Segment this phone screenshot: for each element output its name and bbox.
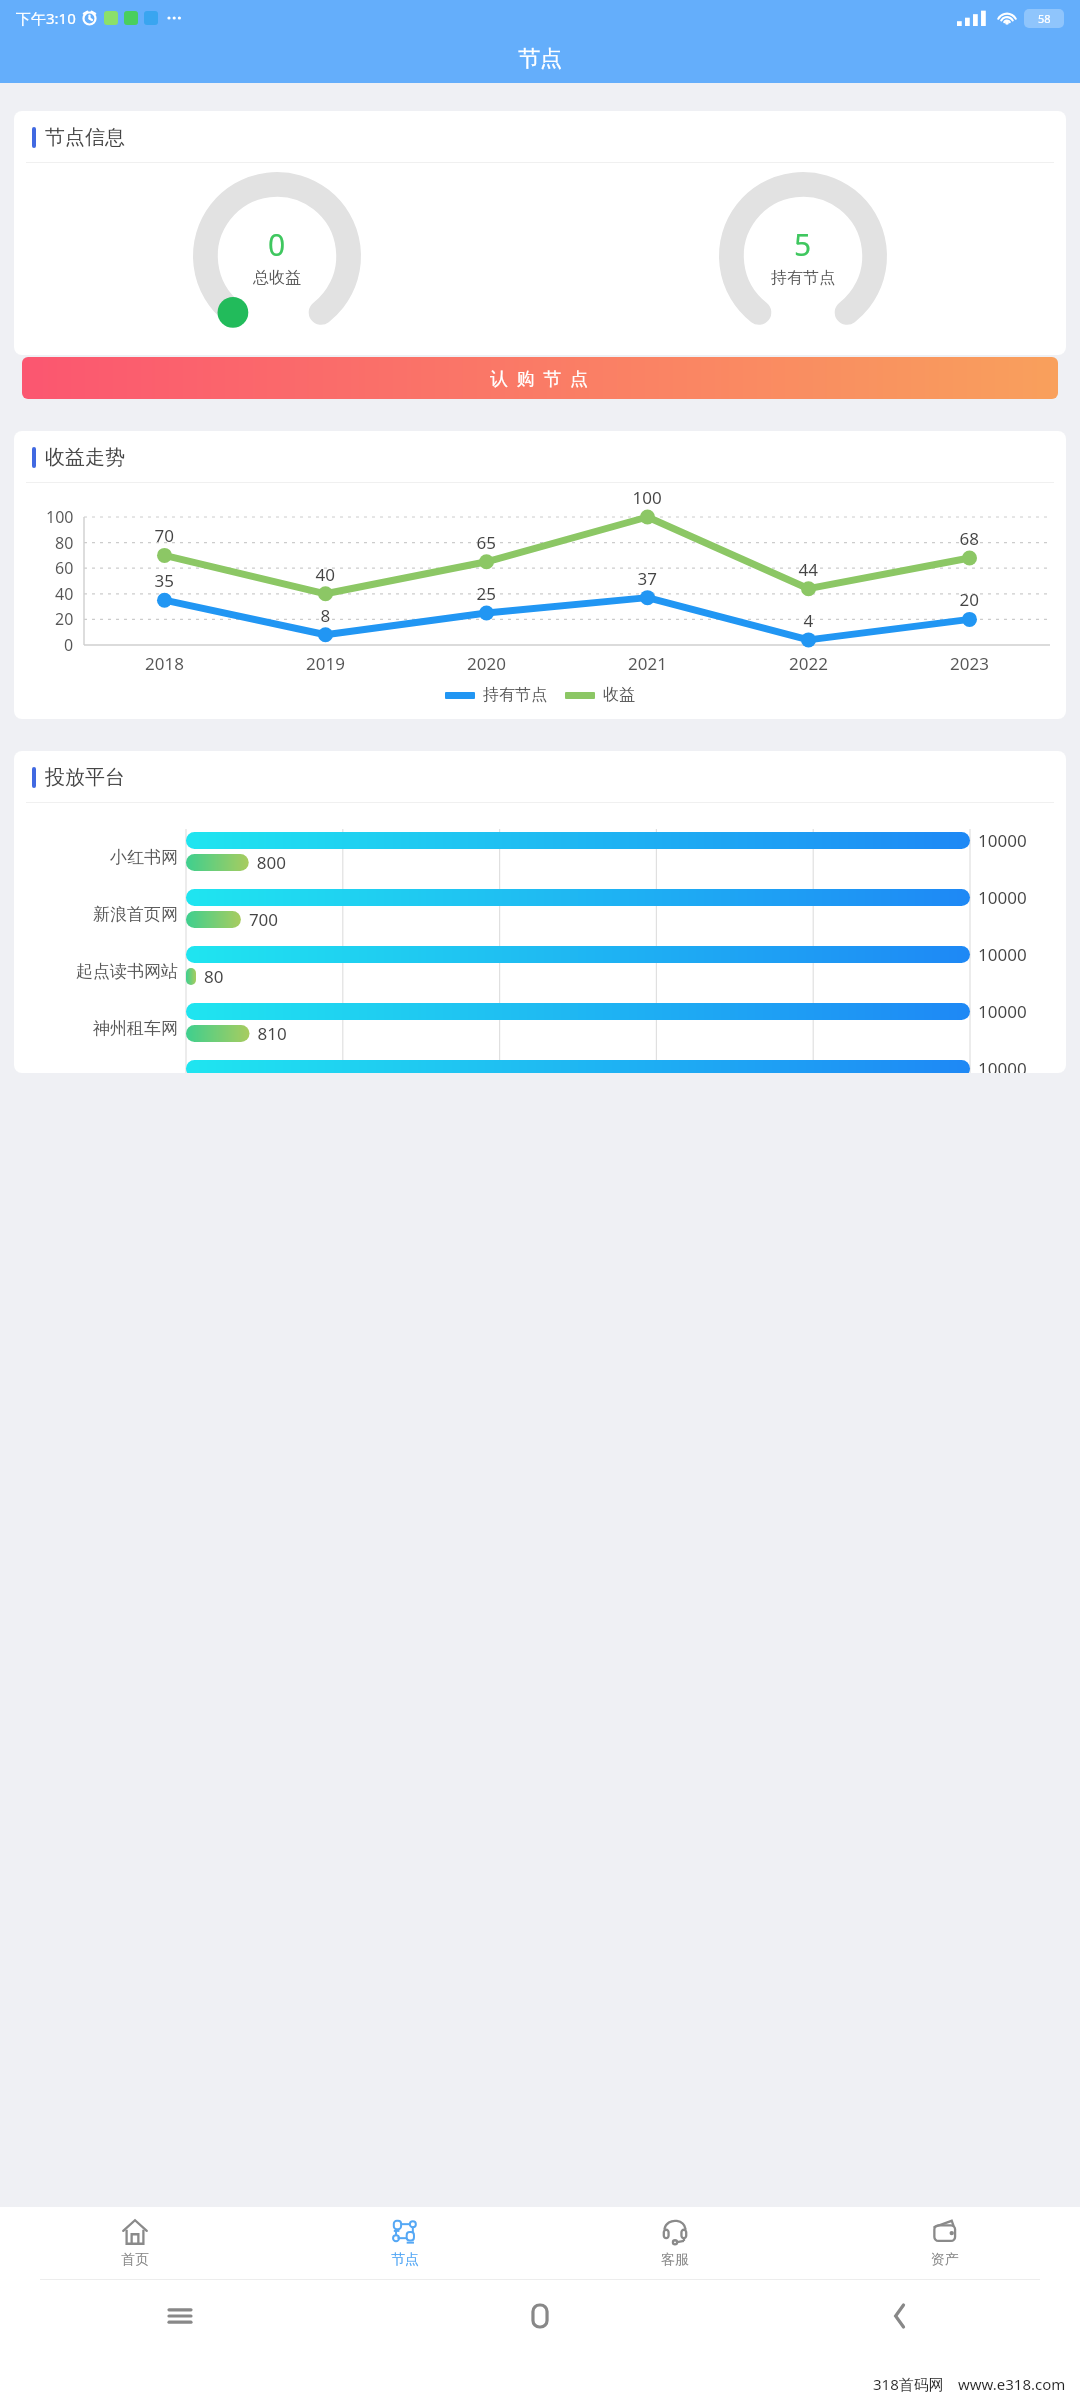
staticText: 58	[1038, 11, 1051, 26]
button[interactable]: 资产	[810, 2207, 1080, 2279]
staticText: 总收益	[253, 268, 301, 288]
staticText: 认 购 节 点	[490, 366, 591, 391]
button[interactable]: Back	[720, 2280, 1080, 2352]
button[interactable]: 节点	[270, 2207, 540, 2279]
staticText: 节点	[518, 45, 562, 73]
staticText: 客服	[661, 2251, 689, 2269]
staticText: 持有节点	[483, 685, 547, 705]
staticText: 投放平台	[45, 765, 125, 790]
staticText: 0	[268, 224, 286, 265]
staticText: 首页	[121, 2251, 149, 2269]
staticText: 5	[794, 224, 812, 265]
button[interactable]: 认 购 节 点	[22, 357, 1058, 399]
button[interactable]: Home	[360, 2280, 720, 2352]
staticText: 节点	[391, 2251, 419, 2269]
staticText: 节点信息	[45, 125, 125, 150]
button[interactable]: 首页	[0, 2207, 270, 2279]
button[interactable]: 客服	[540, 2207, 810, 2279]
staticText: 收益走势	[45, 445, 125, 470]
staticText: 318首码网	[873, 2374, 944, 2394]
staticText: 资产	[931, 2251, 959, 2269]
staticText: www.e318.com	[958, 2374, 1066, 2394]
button[interactable]: Recent apps	[0, 2280, 360, 2352]
staticText: 下午3:10	[16, 8, 76, 28]
staticText: 收益	[603, 685, 635, 705]
staticText: 持有节点	[771, 268, 835, 288]
